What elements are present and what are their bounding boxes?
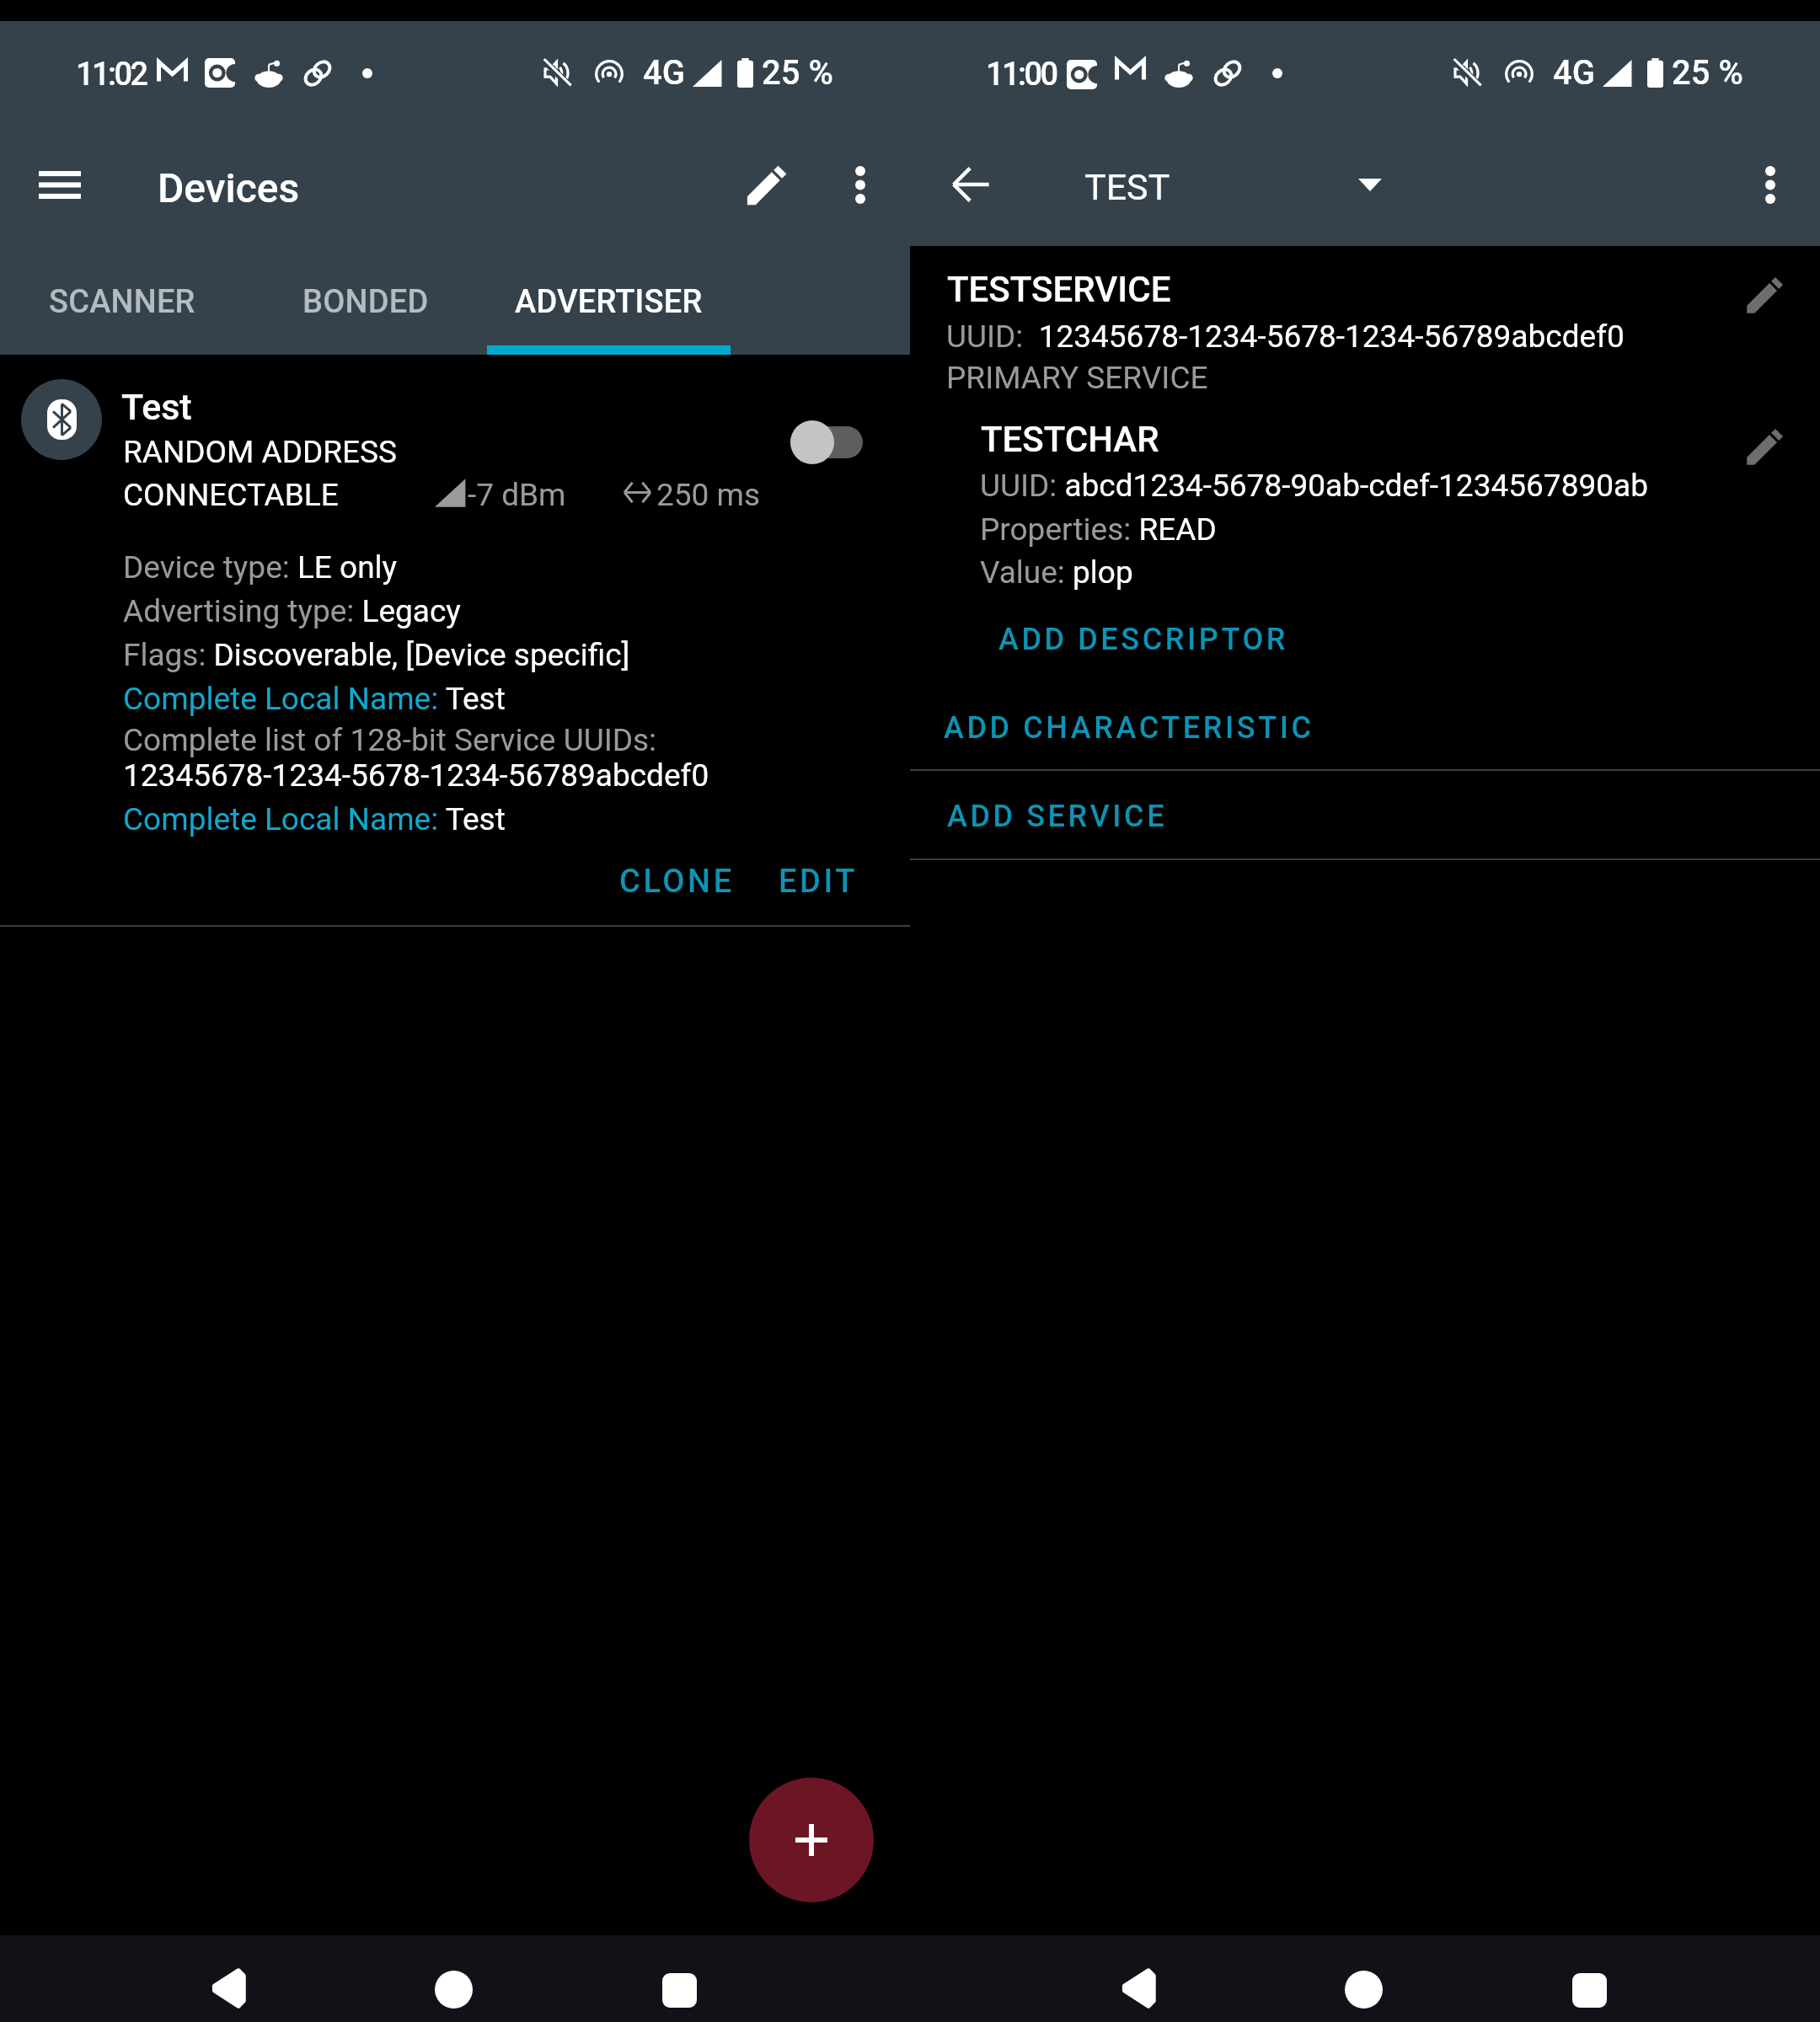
- staticText: Value: plop: [980, 554, 1133, 591]
- staticText: ADD SERVICE: [947, 799, 1168, 834]
- staticText: RANDOM ADDRESS: [123, 434, 398, 470]
- staticText: UUID: abcd1234-5678-90ab-cdef-1234567890…: [980, 468, 1648, 504]
- button[interactable]: Back: [152, 1935, 303, 2022]
- button[interactable]: Home: [1289, 1935, 1441, 2022]
- staticText: UUID: 12345678-1234-5678-1234-56789abcde…: [946, 318, 1625, 355]
- staticText: ADVERTISER: [515, 283, 703, 321]
- staticText: EDIT: [779, 863, 859, 901]
- staticText: 11:02: [76, 56, 147, 94]
- staticText: SCANNER: [49, 283, 195, 321]
- staticText: Devices: [158, 164, 300, 211]
- staticText: 25 %: [1672, 53, 1743, 93]
- staticText: ADD CHARACTERISTIC: [944, 710, 1314, 746]
- staticText: Complete Local Name: Test: [123, 681, 506, 717]
- staticText: 11:00: [986, 56, 1057, 94]
- staticText: 25 %: [762, 53, 833, 93]
- staticText: Complete list of 128-bit Service UUIDs:: [123, 722, 657, 758]
- button[interactable]: Add advertiser: [749, 1778, 874, 1902]
- staticText: 250 ms: [656, 477, 761, 513]
- button[interactable]: SCANNER: [0, 249, 244, 355]
- button[interactable]: Edit characteristic: [1732, 413, 1799, 480]
- button[interactable]: Open navigation drawer: [19, 143, 101, 226]
- staticText: CONNECTABLE: [123, 477, 339, 513]
- staticText: CLONE: [619, 863, 735, 901]
- staticText: TESTSERVICE: [947, 269, 1171, 310]
- button[interactable]: ADVERTISER: [487, 249, 731, 355]
- staticText: 4G: [1553, 53, 1595, 93]
- button[interactable]: BONDED: [244, 249, 487, 355]
- staticText: 12345678-1234-5678-1234-56789abcdef0: [123, 757, 709, 794]
- button[interactable]: ADD SERVICE: [910, 771, 1820, 859]
- button[interactable]: Enable advertising: [790, 420, 834, 464]
- staticText: -7 dBm: [468, 477, 566, 513]
- button[interactable]: Navigate up: [930, 143, 1013, 226]
- staticText: TESTCHAR: [981, 419, 1159, 460]
- button[interactable]: More options: [1729, 143, 1812, 226]
- staticText: Flags: Discoverable, [Device specific]: [123, 637, 630, 673]
- button[interactable]: EDIT: [762, 844, 875, 918]
- staticText: TEST: [1084, 166, 1170, 208]
- button[interactable]: Edit service: [1732, 261, 1799, 329]
- staticText: 4G: [643, 53, 685, 93]
- button[interactable]: Recent apps: [1517, 1935, 1668, 2022]
- staticText: Device type: LE only: [123, 549, 398, 586]
- staticText: PRIMARY SERVICE: [946, 360, 1208, 396]
- button[interactable]: CLONE: [602, 844, 752, 918]
- staticText: Test: [121, 386, 192, 428]
- button[interactable]: Recent apps: [607, 1935, 758, 2022]
- staticText: Advertising type: Legacy: [123, 593, 461, 629]
- button[interactable]: Back: [1062, 1935, 1213, 2022]
- button[interactable]: Home: [379, 1935, 531, 2022]
- button[interactable]: Edit: [725, 143, 808, 226]
- staticText: Complete Local Name: Test: [123, 801, 506, 837]
- button[interactable]: ADD CHARACTERISTIC: [922, 692, 1336, 764]
- staticText: Properties: READ: [980, 511, 1217, 548]
- button[interactable]: Select server: [1336, 151, 1404, 218]
- button[interactable]: More options: [819, 143, 902, 226]
- staticText: BONDED: [302, 283, 429, 321]
- button[interactable]: ADD DESCRIPTOR: [976, 603, 1311, 676]
- staticText: ADD DESCRIPTOR: [998, 622, 1289, 657]
